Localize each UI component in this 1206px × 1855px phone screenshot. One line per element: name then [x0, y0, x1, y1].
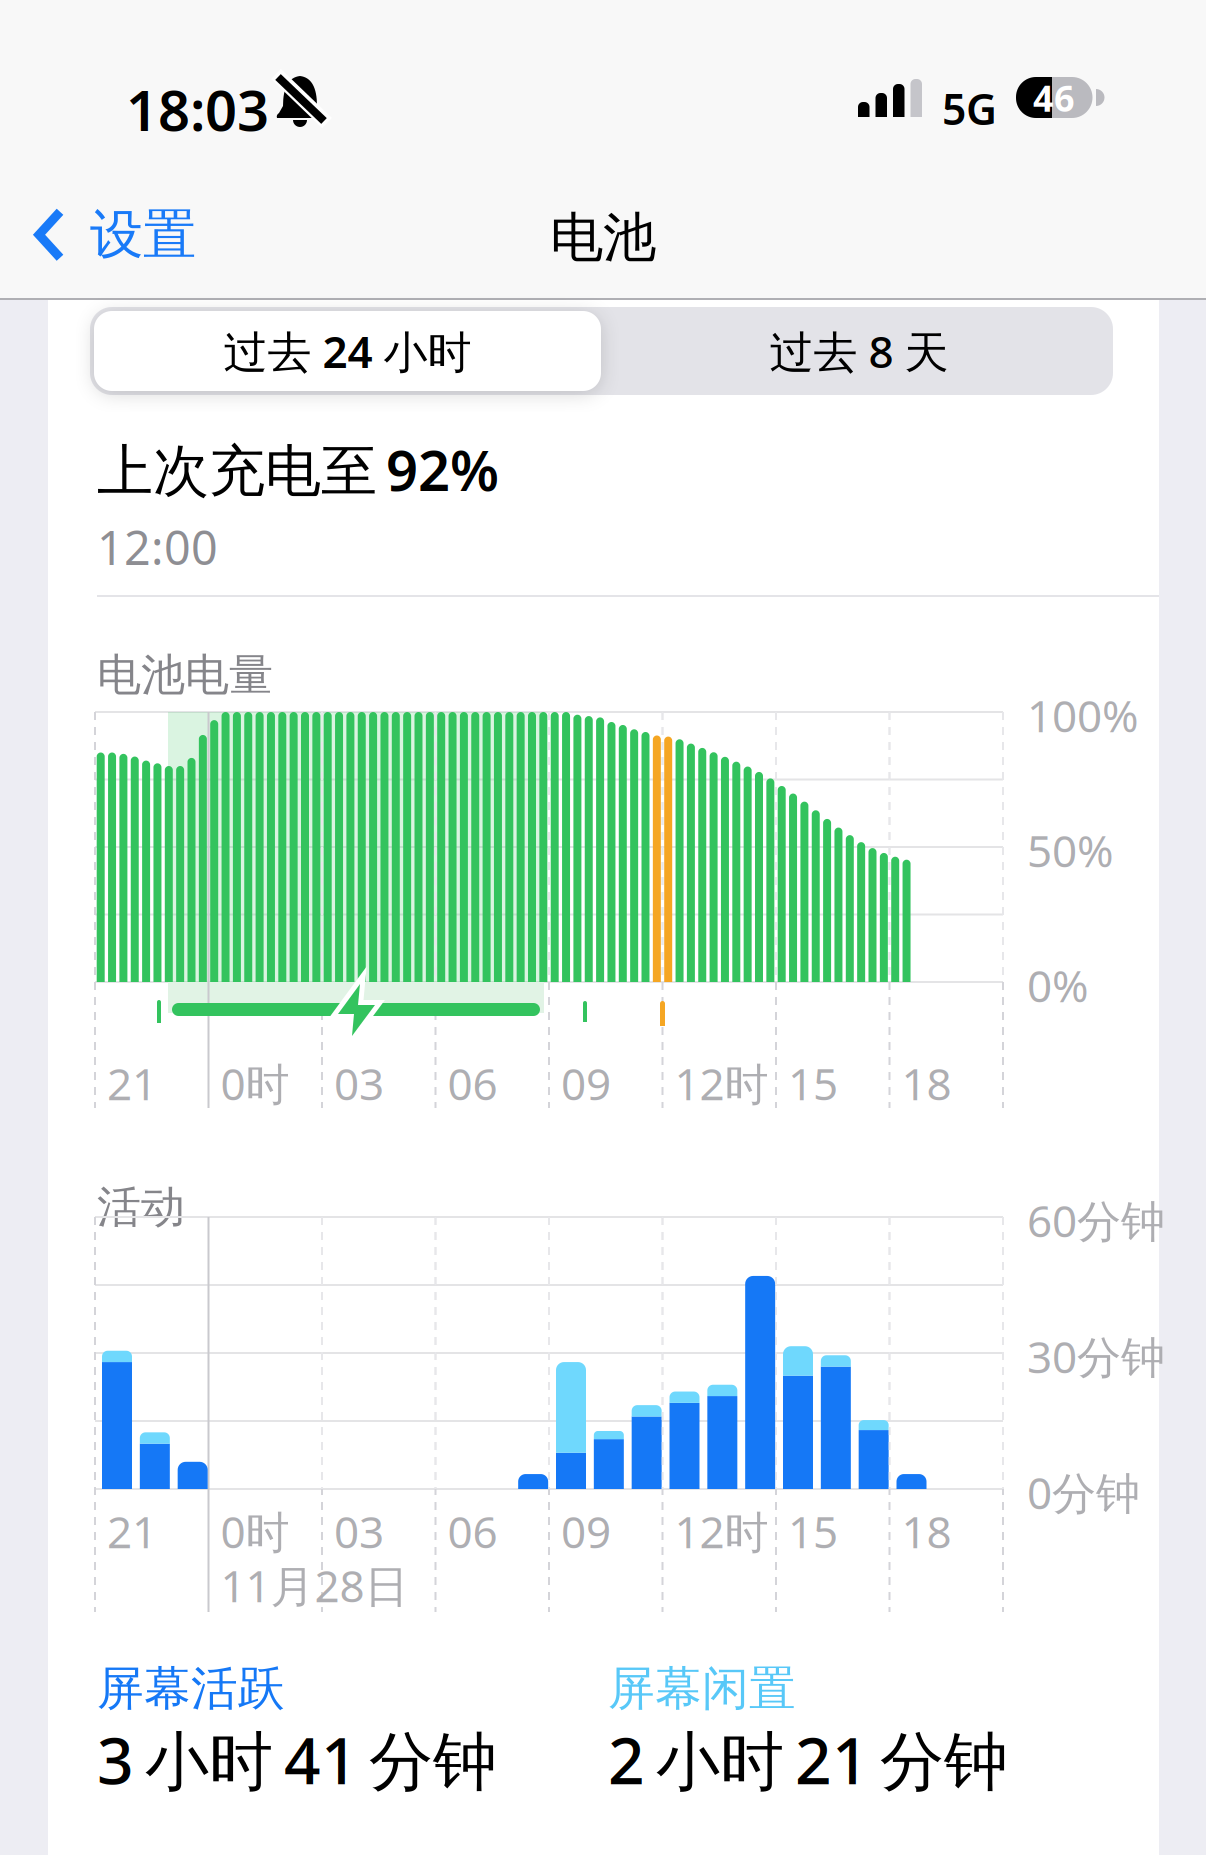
staticText: 过去 8 天 [769, 322, 948, 380]
staticText: 0时 [220, 1502, 289, 1560]
staticText: 03 [334, 1054, 384, 1112]
staticText: 21 [107, 1054, 157, 1112]
staticText: 电池 [550, 205, 656, 270]
staticText: 电池电量 [97, 648, 273, 702]
staticText: 12时 [674, 1502, 768, 1560]
staticText: 0分钟 [1027, 1463, 1140, 1521]
staticText: 03 [334, 1502, 384, 1560]
staticText: 30分钟 [1027, 1327, 1165, 1385]
staticText: 0% [1027, 956, 1089, 1014]
staticText: 5G [942, 80, 997, 137]
staticText: 06 [447, 1054, 497, 1112]
staticText: 过去 24 小时 [223, 322, 471, 380]
staticText: 15 [788, 1502, 838, 1560]
button[interactable]: 设置 [36, 202, 196, 267]
staticText: 3 小时 41 分钟 [97, 1717, 497, 1802]
staticText: 设置 [90, 202, 196, 267]
staticText: 100% [1027, 686, 1139, 744]
staticText: 12时 [674, 1054, 768, 1112]
staticText: 屏幕闲置 [608, 1660, 796, 1717]
staticText: 09 [561, 1502, 611, 1560]
button[interactable]: 过去 8 天 [609, 307, 1109, 395]
staticText: 21 [107, 1502, 157, 1560]
staticText: 15 [788, 1054, 838, 1112]
staticText: 12:00 [97, 516, 218, 578]
staticText: 60分钟 [1027, 1191, 1165, 1249]
button[interactable]: 过去 24 小时 [94, 311, 601, 391]
staticText: 活动 [97, 1180, 185, 1234]
staticText: 18:03 [126, 72, 269, 146]
staticText: 2 小时 21 分钟 [608, 1717, 1008, 1802]
staticText: 06 [447, 1502, 497, 1560]
staticText: 18 [901, 1054, 951, 1112]
staticText: 18 [901, 1502, 951, 1560]
staticText: 50% [1027, 821, 1114, 879]
staticText: 屏幕活跃 [97, 1660, 285, 1717]
staticText: 上次充电至 92% [97, 432, 499, 506]
staticText: 11月28日 [220, 1556, 408, 1614]
staticText: 09 [561, 1054, 611, 1112]
staticText: 0时 [220, 1054, 289, 1112]
staticText: 46 [1033, 74, 1075, 122]
